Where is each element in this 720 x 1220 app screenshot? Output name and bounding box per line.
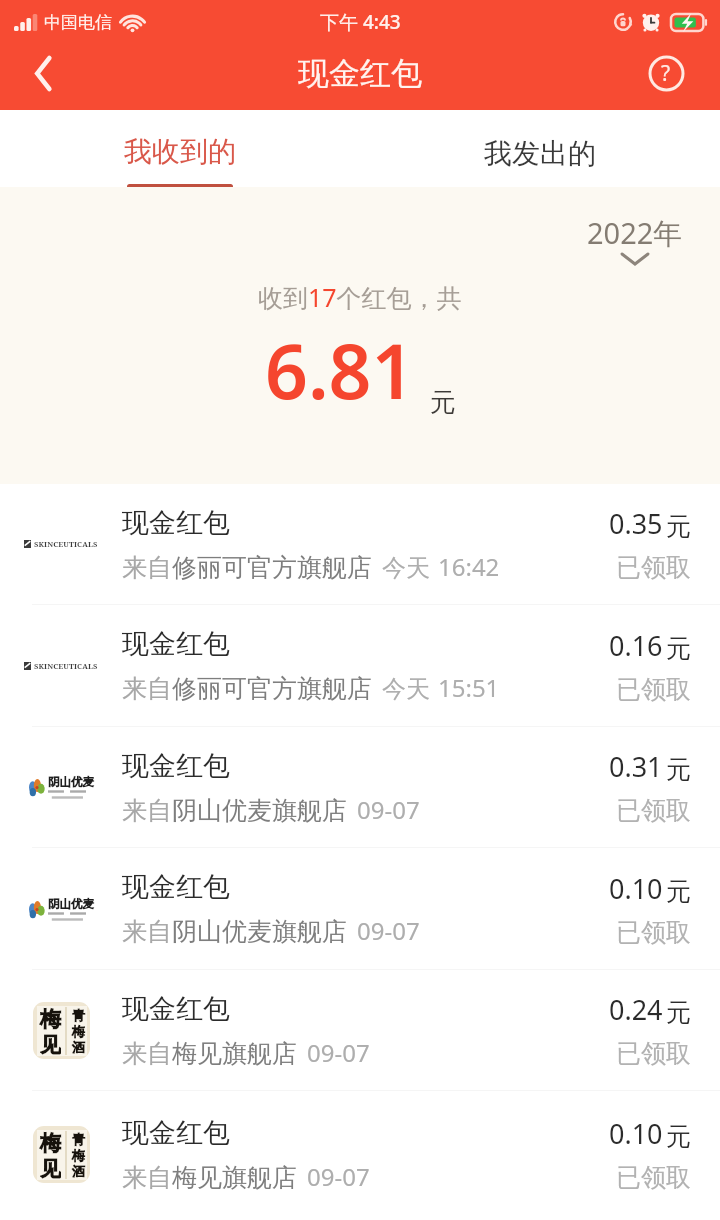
button[interactable]: 我发出的 bbox=[360, 110, 720, 187]
button[interactable]: 2022年 bbox=[587, 213, 683, 264]
button[interactable]: SKINCEUTICALS bbox=[0, 605, 720, 726]
button[interactable]: 阴山优麦 bbox=[0, 848, 720, 969]
staticText: 现金红包 bbox=[122, 749, 230, 783]
staticText: 0.10 bbox=[609, 1115, 663, 1152]
staticText: SKINCEUTICALS bbox=[34, 661, 98, 671]
staticText: 我收到的 bbox=[124, 134, 236, 169]
button[interactable]: 阴山优麦 bbox=[0, 727, 720, 847]
staticText: 来自修丽可官方旗舰店 bbox=[122, 673, 372, 704]
staticText: 元 bbox=[666, 997, 691, 1028]
staticText: 已领取 bbox=[616, 1038, 691, 1069]
staticText: 现金红包 bbox=[122, 506, 230, 540]
staticText: 今天 bbox=[382, 553, 430, 583]
staticText: 09-07 bbox=[307, 1160, 370, 1193]
staticText: 元 bbox=[666, 754, 691, 785]
staticText: 中国电信 bbox=[44, 12, 112, 33]
staticText: 09-07 bbox=[307, 1036, 370, 1069]
staticText: 阴山优麦 bbox=[48, 775, 94, 789]
staticText: 来自梅见旗舰店 bbox=[122, 1162, 297, 1193]
staticText: 元 bbox=[666, 633, 691, 664]
staticText: 青 bbox=[72, 1131, 85, 1147]
button[interactable]: Back bbox=[17, 46, 71, 100]
staticText: 0.16 bbox=[609, 627, 663, 664]
staticText: 已领取 bbox=[616, 552, 691, 583]
staticText: 来自梅见旗舰店 bbox=[122, 1038, 297, 1069]
staticText: 元 bbox=[666, 511, 691, 542]
staticText: 现金红包 bbox=[122, 1116, 230, 1150]
staticText: ? bbox=[661, 59, 671, 88]
staticText: 已领取 bbox=[616, 674, 691, 705]
staticText: 16:42 bbox=[438, 550, 500, 583]
button[interactable]: 我收到的 bbox=[0, 110, 360, 187]
staticText: 元 bbox=[666, 876, 691, 907]
staticText: 梅 bbox=[40, 1006, 61, 1032]
staticText: 15:51 bbox=[438, 671, 500, 704]
staticText: 见 bbox=[40, 1032, 61, 1056]
staticText: 元 bbox=[666, 1121, 691, 1152]
staticText: 今天 bbox=[382, 674, 430, 704]
staticText: 下午 4:43 bbox=[320, 9, 401, 35]
staticText: 酒 bbox=[72, 1039, 85, 1055]
button[interactable]: 梅 bbox=[0, 1091, 720, 1217]
button[interactable]: Help bbox=[639, 46, 693, 100]
staticText: 09-07 bbox=[357, 914, 420, 947]
staticText: 0.31 bbox=[609, 748, 663, 785]
staticText: 梅 bbox=[72, 1023, 85, 1039]
staticText: 梅 bbox=[72, 1147, 85, 1163]
staticText: 收到17个红包，共 bbox=[258, 280, 462, 314]
staticText: 酒 bbox=[72, 1163, 85, 1179]
staticText: 0.35 bbox=[609, 505, 663, 542]
staticText: 来自阴山优麦旗舰店 bbox=[122, 795, 347, 826]
staticText: 青 bbox=[72, 1007, 85, 1023]
staticText: 已领取 bbox=[616, 917, 691, 948]
staticText: 阴山优麦 bbox=[48, 897, 94, 911]
staticText: 我发出的 bbox=[484, 136, 596, 171]
button[interactable]: SKINCEUTICALS bbox=[0, 484, 720, 604]
staticText: 6.81 bbox=[265, 319, 415, 421]
staticText: 现金红包 bbox=[122, 627, 230, 661]
staticText: 梅 bbox=[40, 1130, 61, 1156]
staticText: 见 bbox=[40, 1156, 61, 1180]
staticText: 0.10 bbox=[609, 870, 663, 907]
staticText: 现金红包 bbox=[298, 54, 422, 93]
staticText: 2022年 bbox=[587, 213, 683, 253]
staticText: 0.24 bbox=[609, 991, 663, 1028]
staticText: 已领取 bbox=[616, 795, 691, 826]
staticText: 现金红包 bbox=[122, 992, 230, 1026]
staticText: 现金红包 bbox=[122, 870, 230, 904]
button[interactable]: 梅 bbox=[0, 970, 720, 1090]
staticText: 来自阴山优麦旗舰店 bbox=[122, 916, 347, 947]
staticText: 来自修丽可官方旗舰店 bbox=[122, 552, 372, 583]
staticText: 元 bbox=[430, 386, 456, 419]
staticText: SKINCEUTICALS bbox=[34, 539, 98, 549]
staticText: 09-07 bbox=[357, 793, 420, 826]
staticText: 已领取 bbox=[616, 1162, 691, 1193]
